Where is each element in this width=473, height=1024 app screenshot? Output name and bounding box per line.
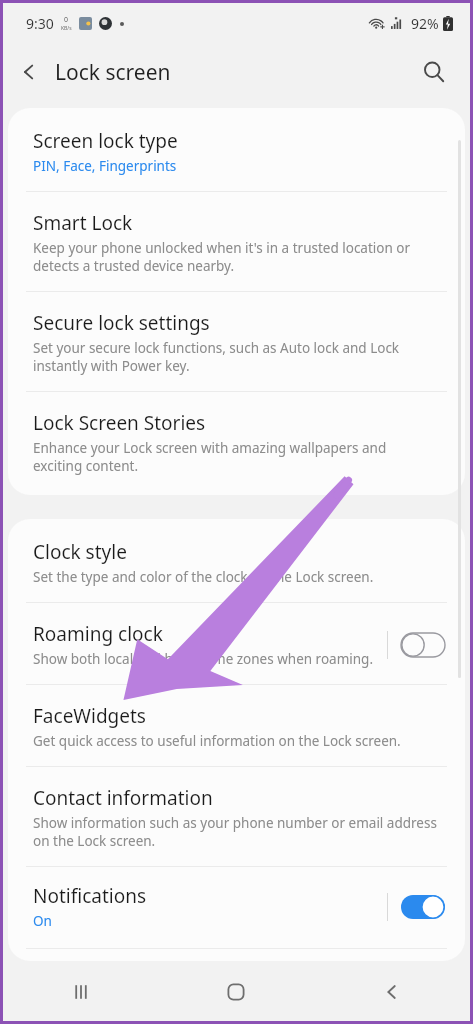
staticText: Contact information — [33, 785, 213, 811]
staticText: PIN, Face, Fingerprints — [33, 157, 177, 175]
button[interactable]: Recents — [3, 962, 158, 1021]
staticText: Lock screen — [55, 58, 171, 87]
staticText: Roaming clock — [33, 621, 163, 647]
staticText: 9:30 — [26, 14, 54, 33]
staticText: FaceWidgets — [33, 703, 146, 729]
button[interactable]: Notifications — [8, 867, 465, 948]
staticText: Get quick access to useful information o… — [33, 732, 401, 750]
button[interactable]: Contact information — [8, 767, 465, 866]
button[interactable]: Roaming clock — [8, 603, 465, 684]
staticText: 92% — [411, 14, 439, 33]
button[interactable]: Lock Screen Stories — [8, 392, 465, 495]
button[interactable]: Screen lock type — [8, 108, 465, 191]
button[interactable]: Turn off — [401, 895, 445, 919]
staticText: Smart Lock — [33, 210, 133, 236]
button[interactable]: Home — [158, 962, 314, 1021]
staticText: Notifications — [33, 883, 147, 909]
button[interactable]: Search — [410, 48, 458, 96]
button[interactable]: Clock style — [8, 519, 465, 602]
staticText: Keep your phone unlocked when it's in a … — [33, 239, 437, 275]
button[interactable]: Turn on — [401, 633, 445, 657]
button[interactable]: Back — [3, 46, 55, 98]
staticText: On — [33, 912, 52, 930]
button[interactable]: FaceWidgets — [8, 685, 465, 766]
staticText: Set the type and color of the clock on t… — [33, 568, 374, 586]
staticText: Show information such as your phone numb… — [33, 814, 437, 850]
button[interactable]: Back — [314, 962, 470, 1021]
staticText: Enhance your Lock screen with amazing wa… — [33, 439, 437, 475]
staticText: Screen lock type — [33, 128, 178, 154]
button[interactable]: Secure lock settings — [8, 292, 465, 391]
staticText: Lock Screen Stories — [33, 410, 206, 436]
staticText: Clock style — [33, 539, 127, 565]
button[interactable]: Smart Lock — [8, 192, 465, 291]
staticText: KB/s — [61, 25, 72, 32]
staticText: Set your secure lock functions, such as … — [33, 339, 437, 375]
staticText: 0 — [64, 15, 69, 25]
staticText: Show both local and home time zones when… — [33, 650, 374, 668]
staticText: Secure lock settings — [33, 310, 210, 336]
